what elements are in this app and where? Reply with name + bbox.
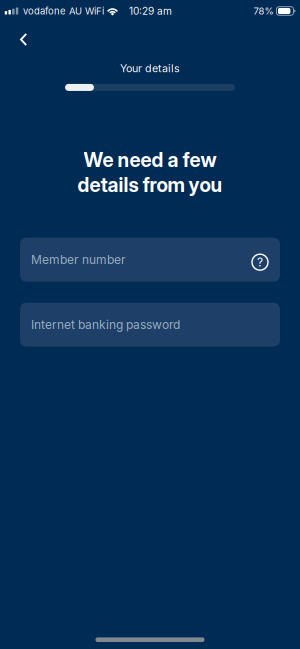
button[interactable]: What is my member number? [251, 248, 269, 271]
staticText: 10:29 am [129, 5, 172, 17]
staticText: We need a few [83, 148, 216, 172]
button[interactable]: Back [0, 22, 41, 56]
staticText: ? [257, 255, 263, 269]
staticText: vodafone AU WiFi [23, 5, 104, 17]
staticText: Internet banking password [31, 317, 180, 332]
staticText: details from you [77, 173, 222, 197]
staticText: Member number [31, 252, 126, 267]
staticText: 78% [253, 5, 273, 17]
staticText: Your details [120, 62, 180, 75]
